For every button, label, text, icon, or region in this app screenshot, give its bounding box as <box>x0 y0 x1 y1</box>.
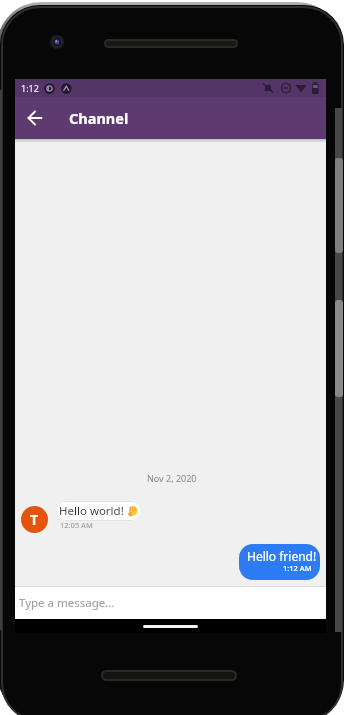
staticText: Hello world! <box>56 503 127 519</box>
staticText: Nov 2, 2020 <box>147 472 197 484</box>
button[interactable]: Hello world! <box>56 501 142 521</box>
button[interactable] <box>143 625 198 628</box>
button[interactable]: T <box>21 506 48 533</box>
staticText: 12:05 AM <box>60 520 93 530</box>
staticText: 1:12 <box>21 82 39 94</box>
staticText: T <box>30 510 39 529</box>
button[interactable] <box>27 110 43 126</box>
staticText: Type a message... <box>19 595 115 611</box>
button[interactable]: Type a message... <box>15 586 326 619</box>
staticText: Hello friend! <box>247 548 317 564</box>
staticText: 1:12 AM <box>283 563 312 573</box>
button[interactable]: Hello friend! <box>239 544 320 580</box>
staticText: Channel <box>69 108 129 128</box>
